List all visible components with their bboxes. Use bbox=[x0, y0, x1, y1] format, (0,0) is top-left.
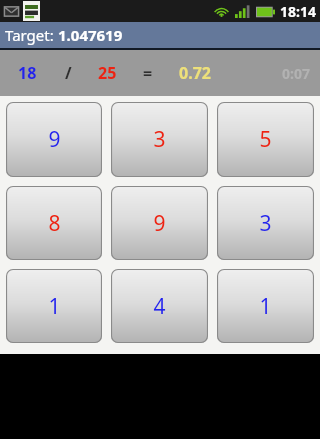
staticText: 3 bbox=[153, 125, 166, 154]
staticText: 18:14 bbox=[280, 2, 316, 21]
staticText: 18 bbox=[18, 62, 37, 84]
button[interactable]: 3 bbox=[217, 186, 314, 260]
staticText: 1 bbox=[48, 292, 61, 321]
staticText: 4 bbox=[153, 292, 166, 321]
staticText: 8 bbox=[48, 209, 61, 238]
button[interactable]: 8 bbox=[6, 186, 102, 260]
staticText: 9 bbox=[153, 209, 166, 238]
staticText: 5 bbox=[259, 125, 272, 154]
staticText: 1 bbox=[259, 292, 272, 321]
button[interactable]: 5 bbox=[217, 102, 314, 177]
staticText: 0.72 bbox=[179, 62, 211, 84]
button[interactable]: 3 bbox=[111, 102, 208, 177]
button[interactable]: 1 bbox=[6, 269, 102, 343]
staticText: Target: bbox=[5, 25, 58, 45]
staticText: 3 bbox=[259, 209, 272, 238]
staticText: 1.047619 bbox=[58, 25, 123, 45]
button[interactable]: 9 bbox=[111, 186, 208, 260]
staticText: 25 bbox=[98, 62, 117, 84]
staticText: 9 bbox=[48, 125, 61, 154]
button[interactable]: 4 bbox=[111, 269, 208, 343]
button[interactable]: 9 bbox=[6, 102, 102, 177]
button[interactable]: Target: bbox=[0, 22, 320, 48]
staticText: 0:07 bbox=[282, 64, 310, 83]
staticText: = bbox=[143, 62, 153, 84]
staticText: / bbox=[65, 62, 72, 84]
button[interactable]: 1 bbox=[217, 269, 314, 343]
